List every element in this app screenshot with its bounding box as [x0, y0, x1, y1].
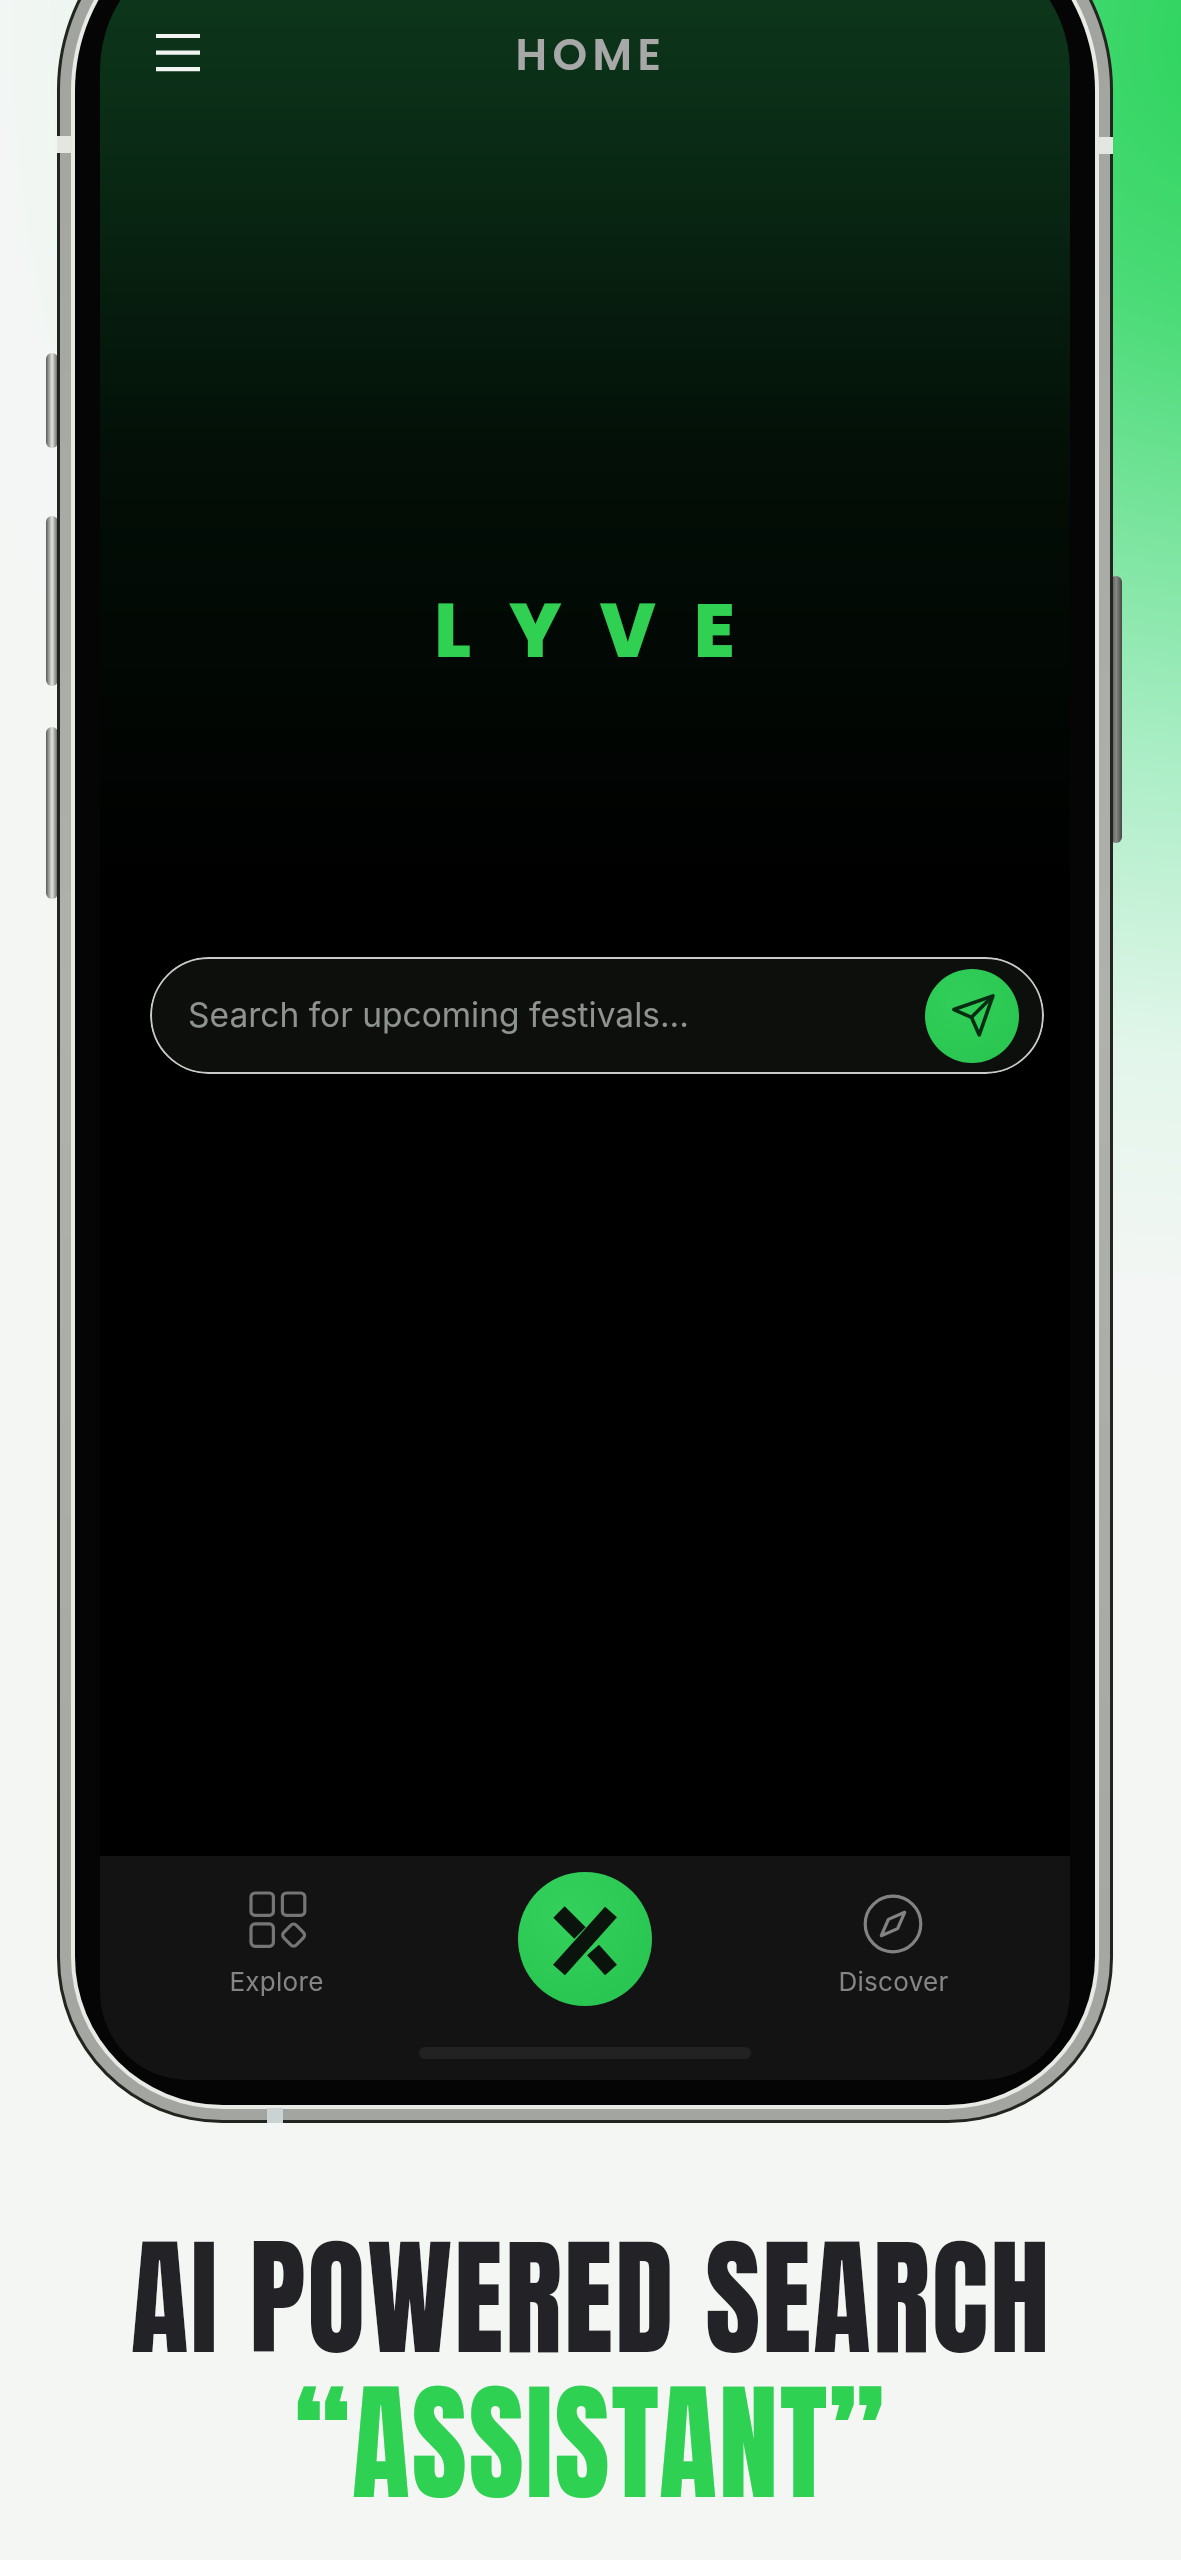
- staticText: Search for upcoming festivals...: [188, 995, 689, 1036]
- staticText: HOME: [515, 24, 667, 86]
- staticText: “ASSISTANT”: [295, 2346, 886, 2539]
- button[interactable]: Search for upcoming festivals...: [150, 957, 1044, 1074]
- button[interactable]: [518, 1872, 652, 2006]
- button[interactable]: [140, 18, 216, 88]
- button[interactable]: Discover: [823, 1886, 963, 2016]
- button[interactable]: Explore: [206, 1886, 346, 2016]
- staticText: Explore: [229, 1966, 324, 1997]
- staticText: AI POWERED SEARCH: [131, 2201, 1051, 2394]
- staticText: LYVE: [434, 578, 773, 683]
- staticText: Discover: [838, 1966, 949, 1997]
- button[interactable]: [925, 969, 1019, 1063]
